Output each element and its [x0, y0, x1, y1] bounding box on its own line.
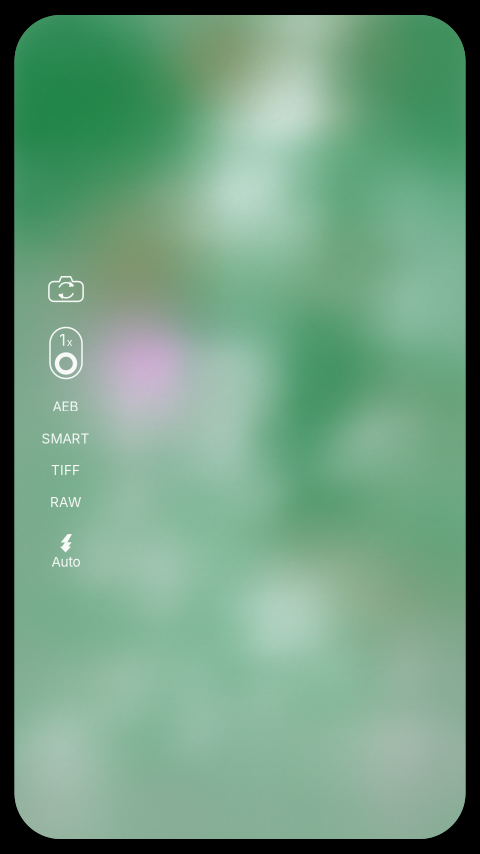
button[interactable]: Flash auto: [28, 531, 104, 573]
button[interactable]: Zoom 1x: [39, 325, 93, 381]
staticText: x: [67, 335, 73, 348]
staticText: Auto: [51, 553, 80, 570]
button[interactable]: TIFF: [27, 457, 103, 483]
button[interactable]: Switch camera: [39, 268, 93, 310]
staticText: AEB: [52, 398, 78, 415]
staticText: TIFF: [51, 462, 80, 478]
button[interactable]: AEB: [27, 393, 103, 419]
staticText: RAW: [50, 494, 81, 510]
button[interactable]: RAW: [27, 489, 103, 515]
staticText: SMART: [41, 430, 89, 447]
button[interactable]: SMART: [27, 425, 103, 451]
staticText: 1: [59, 330, 66, 350]
